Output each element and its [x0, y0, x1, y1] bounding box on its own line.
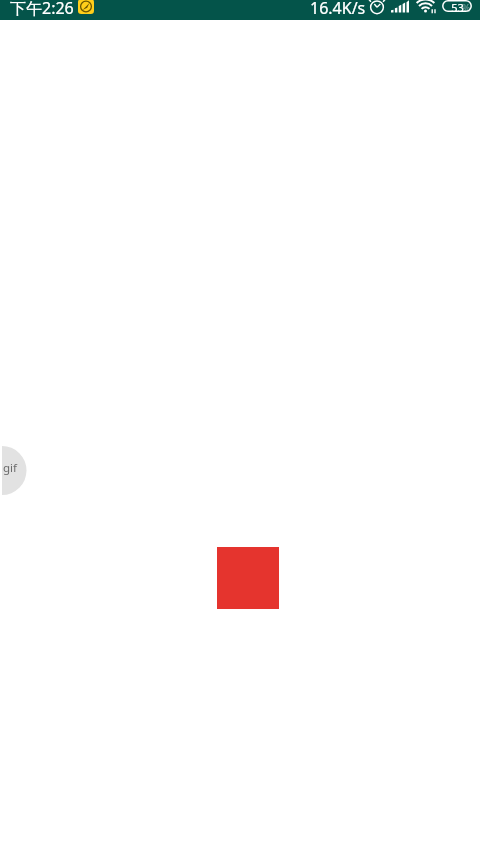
staticText: gif	[3, 460, 17, 476]
staticText: 53	[451, 0, 464, 15]
other: Battery 53 percent	[442, 0, 472, 15]
other: Wi-Fi	[417, 0, 437, 14]
staticText: %	[462, 1, 471, 15]
other: Notification	[78, 0, 94, 14]
other: Alarm set	[370, 0, 384, 14]
staticText: 16.4K/s	[310, 0, 366, 17]
other: Mobile signal	[391, 0, 409, 13]
staticText: 下午2:26	[10, 0, 74, 17]
button[interactable]: GIF	[2, 446, 27, 495]
